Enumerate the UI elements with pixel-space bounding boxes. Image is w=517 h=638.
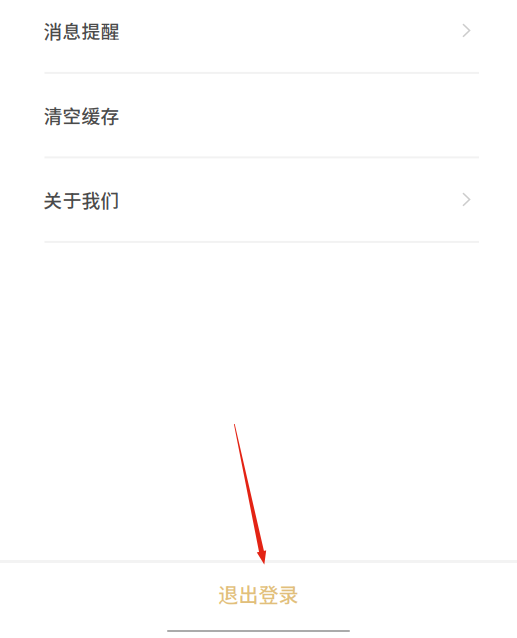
button[interactable]: 关于我们 <box>0 158 517 243</box>
button[interactable]: 消息提醒 <box>0 0 517 74</box>
button[interactable]: 清空缓存 <box>0 74 517 158</box>
staticText: 关于我们 <box>43 186 119 213</box>
staticText: 清空缓存 <box>43 102 119 129</box>
staticText: 消息提醒 <box>43 17 119 44</box>
button[interactable]: 退出登录 <box>0 563 517 624</box>
staticText: 退出登录 <box>218 579 298 608</box>
